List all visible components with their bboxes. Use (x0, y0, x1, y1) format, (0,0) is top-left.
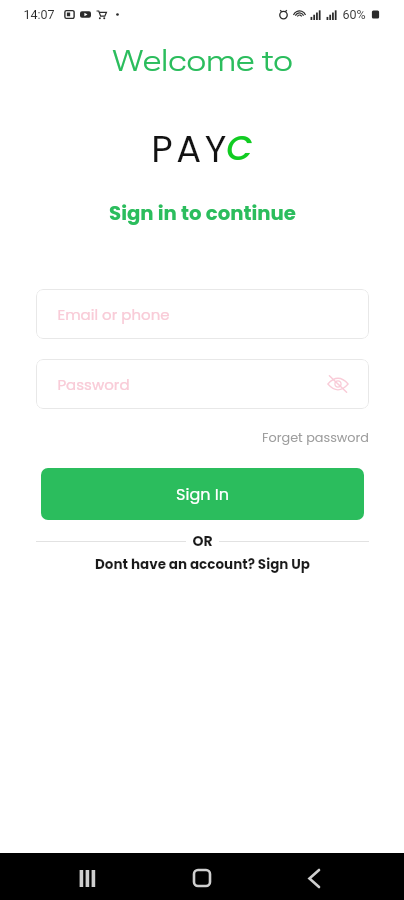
button[interactable]: Password (36, 359, 369, 409)
button[interactable]: Email or phone (36, 289, 369, 339)
button[interactable]: Dont have an account? Sign Up (95, 555, 310, 574)
button[interactable]: Recents (66, 856, 110, 900)
staticText: Sign In (176, 483, 229, 505)
staticText: Dont have an account? Sign Up (95, 555, 310, 574)
staticText: 14:07 (23, 7, 55, 22)
staticText: Sign in to continue (109, 199, 296, 227)
button[interactable]: Show password (327, 373, 349, 395)
staticText: Password (57, 374, 130, 395)
button[interactable]: Home (180, 856, 224, 900)
button[interactable]: Back (292, 856, 336, 900)
staticText: Email or phone (57, 304, 170, 325)
staticText: 60% (342, 7, 366, 22)
staticText: OR (192, 531, 213, 551)
staticText: Welcome to (112, 43, 293, 78)
staticText: Forget password (262, 429, 369, 447)
staticText: C (226, 124, 253, 164)
button[interactable]: Sign In (41, 468, 364, 520)
button[interactable]: Forget password (262, 429, 369, 447)
staticText: PAY (151, 123, 230, 163)
